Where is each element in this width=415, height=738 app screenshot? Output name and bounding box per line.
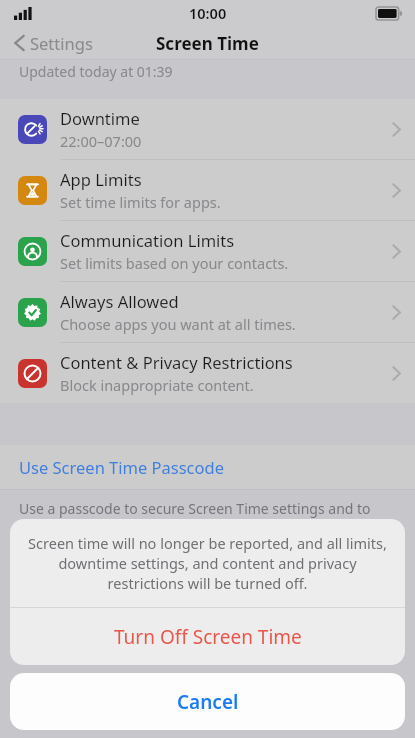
staticText: Updated today at 01:39 bbox=[19, 62, 173, 81]
button[interactable]: Always Allowed bbox=[0, 282, 415, 343]
staticText: Communication Limits bbox=[60, 229, 235, 251]
staticText: App Limits bbox=[60, 168, 142, 190]
button[interactable]: Content & Privacy Restrictions bbox=[0, 343, 415, 403]
staticText: Choose apps you want at all times. bbox=[60, 314, 296, 334]
staticText: Settings bbox=[30, 32, 93, 54]
staticText: 22:00–07:00 bbox=[60, 131, 142, 151]
button[interactable]: App Limits bbox=[0, 160, 415, 221]
button[interactable]: Settings bbox=[10, 28, 97, 58]
button[interactable]: Use Screen Time Passcode bbox=[0, 445, 415, 489]
button[interactable]: Turn Off Screen Time bbox=[10, 608, 405, 665]
staticText: Use a passcode to secure Screen Time set… bbox=[19, 499, 399, 554]
staticText: Screen time will no longer be reported, … bbox=[26, 533, 389, 593]
staticText: Turn Off Screen Time bbox=[114, 624, 302, 650]
staticText: Use Screen Time Passcode bbox=[19, 456, 224, 478]
staticText: Cancel bbox=[177, 689, 239, 715]
staticText: Always Allowed bbox=[60, 290, 179, 312]
staticText: Block inappropriate content. bbox=[60, 375, 254, 395]
button[interactable]: Communication Limits bbox=[0, 221, 415, 282]
staticText: Set time limits for apps. bbox=[60, 192, 221, 212]
button[interactable]: Cancel bbox=[10, 673, 405, 730]
button[interactable]: Downtime bbox=[0, 99, 415, 160]
staticText: Screen Time bbox=[156, 32, 259, 55]
staticText: 10:00 bbox=[189, 3, 227, 23]
staticText: Content & Privacy Restrictions bbox=[60, 351, 293, 373]
staticText: Downtime bbox=[60, 107, 140, 129]
staticText: Set limits based on your contacts. bbox=[60, 253, 289, 273]
